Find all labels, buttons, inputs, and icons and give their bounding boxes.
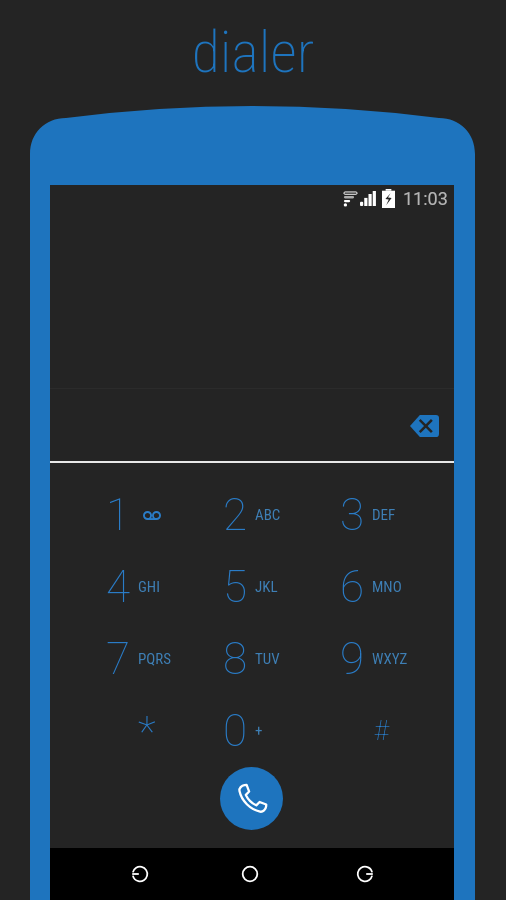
button[interactable]: 0: [223, 695, 340, 767]
staticText: PQRS: [138, 650, 172, 668]
staticText: 1: [106, 489, 131, 541]
button[interactable]: 5: [223, 551, 340, 623]
staticText: 4: [106, 561, 131, 613]
staticText: 7: [106, 633, 131, 685]
button[interactable]: #: [340, 695, 454, 767]
staticText: GHI: [138, 578, 160, 596]
staticText: DEF: [372, 506, 396, 524]
staticText: WXYZ: [372, 650, 408, 668]
button[interactable]: 4: [106, 551, 223, 623]
staticText: 11:03: [403, 188, 448, 209]
staticText: 9: [340, 633, 365, 685]
staticText: ABC: [255, 506, 281, 524]
staticText: *: [138, 707, 156, 756]
button[interactable]: *: [106, 695, 223, 767]
button[interactable]: 7: [106, 623, 223, 695]
button[interactable]: 2: [223, 479, 340, 551]
button[interactable]: Back: [118, 852, 162, 896]
staticText: JKL: [255, 578, 278, 596]
button[interactable]: 6: [340, 551, 454, 623]
staticText: MNO: [372, 578, 402, 596]
staticText: 8: [223, 633, 248, 685]
button[interactable]: 9: [340, 623, 454, 695]
staticText: TUV: [255, 650, 280, 668]
staticText: 3: [340, 489, 365, 541]
button[interactable]: 8: [223, 623, 340, 695]
button[interactable]: Call: [220, 767, 283, 830]
button[interactable]: 3: [340, 479, 454, 551]
staticText: 5: [223, 561, 248, 613]
button[interactable]: Backspace: [400, 402, 448, 450]
button[interactable]: Home: [228, 852, 272, 896]
staticText: #: [374, 715, 389, 747]
staticText: dialer: [0, 18, 506, 86]
staticText: 0: [223, 705, 248, 757]
staticText: 6: [340, 561, 365, 613]
staticText: 2: [223, 489, 248, 541]
staticText: +: [255, 722, 263, 740]
button[interactable]: 1: [106, 479, 223, 551]
button[interactable]: Recent apps: [343, 852, 387, 896]
